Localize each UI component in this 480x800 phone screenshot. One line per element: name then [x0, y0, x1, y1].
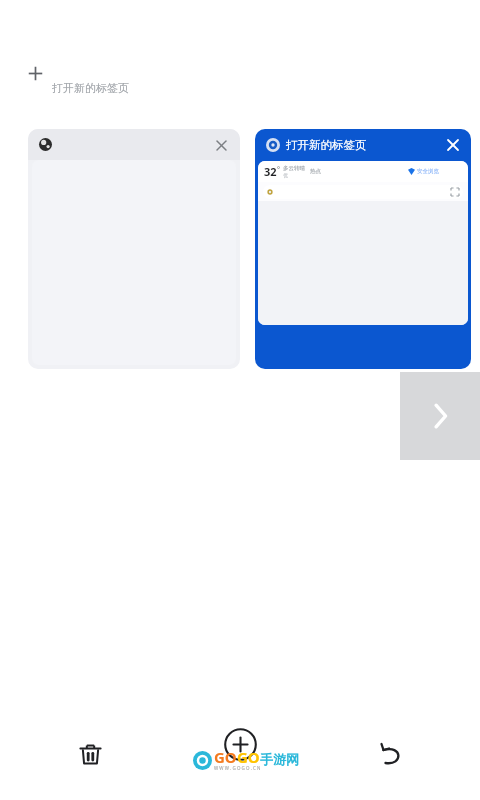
button[interactable]: Close all tabs [0, 708, 180, 800]
staticText: 安全浏览 [417, 168, 439, 175]
button[interactable]: Undo [300, 708, 480, 800]
button[interactable]: 打开新的标签页 [255, 129, 471, 369]
staticText: ° [277, 165, 280, 175]
staticText: 打开新的标签页 [286, 138, 367, 152]
staticText: 热点 [310, 168, 321, 175]
staticText: 优 [283, 172, 288, 178]
button[interactable]: Close tab [441, 133, 465, 157]
staticText: GO [237, 747, 260, 767]
button[interactable]: 打开新的标签页 [20, 60, 165, 102]
staticText: 打开新的标签页 [52, 81, 129, 95]
button[interactable]: New tab [180, 708, 300, 800]
button[interactable]: Close tab [28, 129, 240, 369]
staticText: GO [214, 747, 237, 767]
staticText: 手游网 [260, 751, 299, 767]
button[interactable] [263, 185, 463, 199]
button[interactable]: Next [400, 372, 480, 460]
button[interactable]: Close tab [209, 133, 233, 157]
staticText: W W W . G O G O . C N [214, 765, 261, 771]
staticText: 多云转晴 [283, 165, 305, 172]
staticText: 32 [264, 164, 277, 179]
